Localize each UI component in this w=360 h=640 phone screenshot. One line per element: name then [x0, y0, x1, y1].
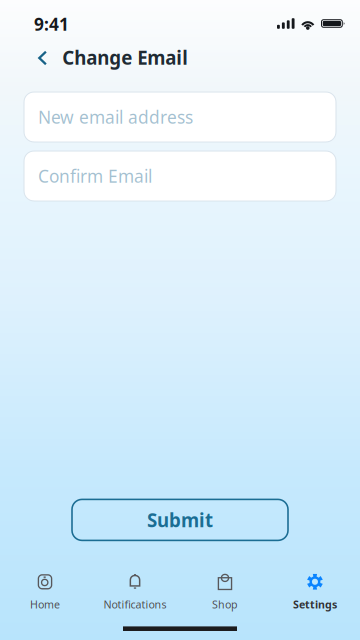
button[interactable]: New email address [24, 92, 336, 142]
staticText: Shop [212, 597, 238, 611]
staticText: 9:41 [34, 12, 69, 35]
staticText: Home [30, 597, 60, 611]
staticText: Submit [147, 507, 213, 532]
button[interactable]: Submit [72, 499, 288, 540]
button[interactable]: Settings [270, 570, 360, 614]
button[interactable]: Home [0, 570, 90, 614]
button[interactable]: Notifications [90, 570, 180, 614]
staticText: Change Email [62, 45, 188, 70]
staticText: New email address [38, 105, 193, 128]
button[interactable]: Shop [180, 570, 270, 614]
staticText: Notifications [103, 597, 166, 611]
button[interactable]: Confirm Email [24, 151, 336, 201]
staticText: Confirm Email [38, 164, 152, 187]
button[interactable]: Back [0, 42, 62, 73]
staticText: Settings [293, 597, 337, 611]
